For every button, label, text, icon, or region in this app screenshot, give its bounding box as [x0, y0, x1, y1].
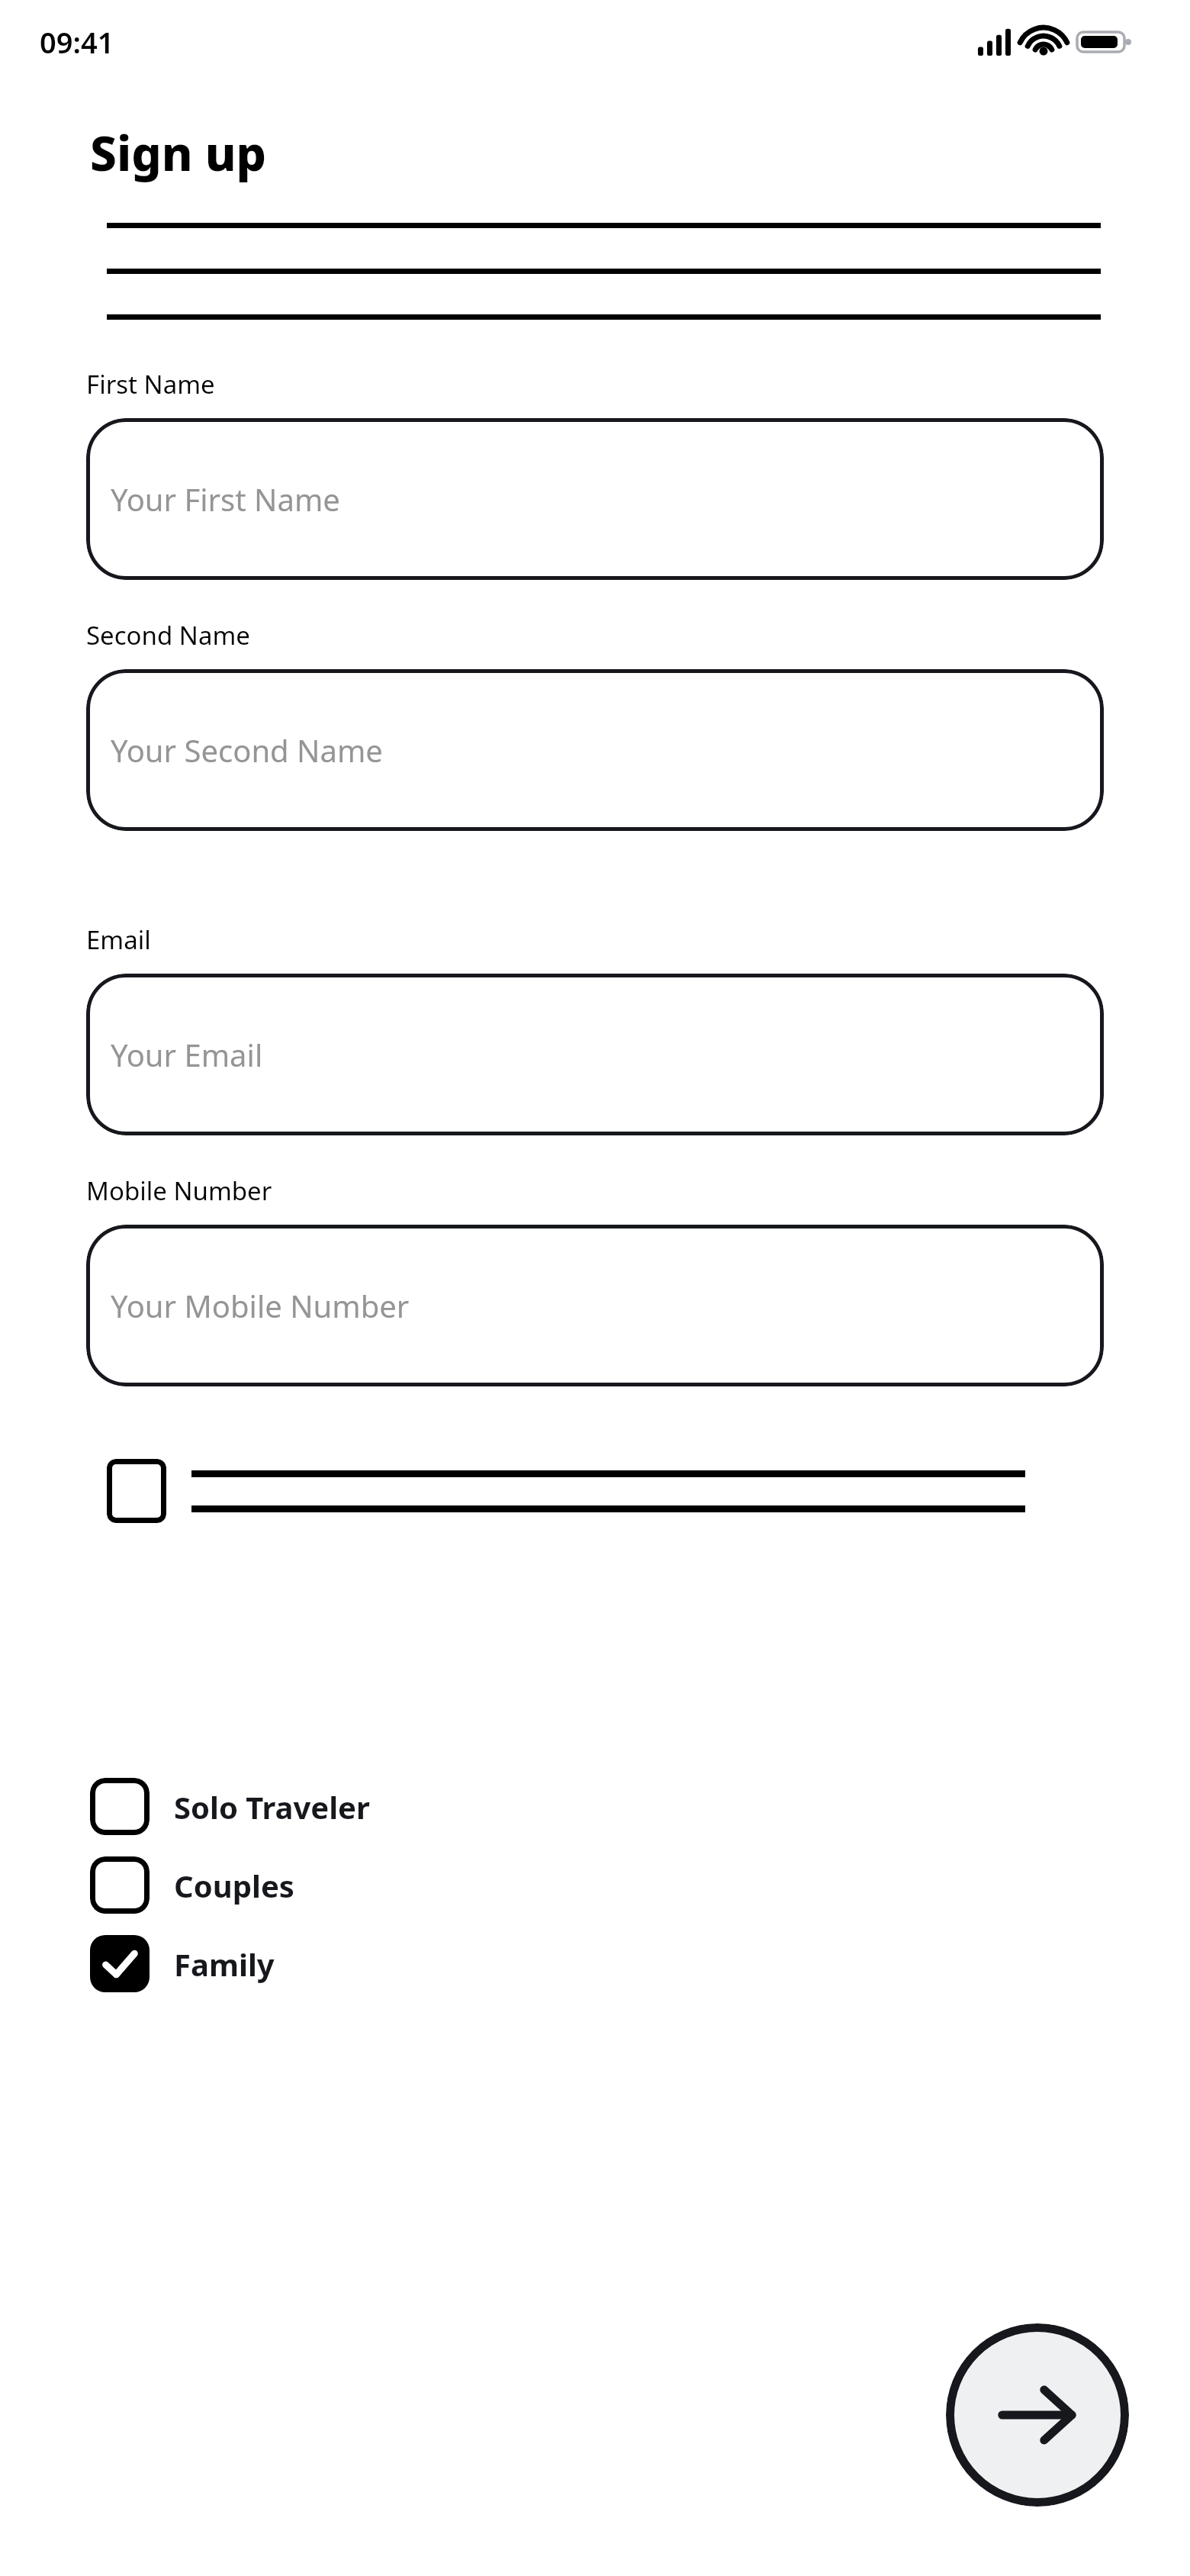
button[interactable]: Family [90, 1924, 1190, 2003]
staticText: Mobile Number [86, 1174, 272, 1208]
staticText: Your Email [111, 1034, 263, 1075]
staticText: Your Mobile Number [111, 1285, 410, 1326]
button[interactable]: Your Mobile Number [86, 1225, 1104, 1386]
button[interactable]: Next [946, 2323, 1129, 2507]
staticText: 09:41 [40, 22, 114, 62]
button[interactable]: Solo Traveler [90, 1767, 1190, 1846]
staticText: Your First Name [111, 478, 340, 520]
staticText: Family [174, 1943, 275, 1985]
button[interactable]: Your Email [86, 974, 1104, 1135]
staticText: Second Name [86, 618, 250, 652]
staticText: Couples [174, 1865, 294, 1906]
staticText: Sign up [90, 121, 267, 185]
staticText: First Name [86, 367, 215, 401]
button[interactable]: Your First Name [86, 418, 1104, 580]
staticText: Email [86, 923, 151, 957]
staticText: Your Second Name [111, 729, 383, 771]
staticText: Solo Traveler [174, 1786, 370, 1827]
button[interactable]: Your Second Name [86, 669, 1104, 831]
button[interactable]: Couples [90, 1846, 1190, 1924]
button[interactable]: Accept terms [107, 1459, 1083, 1523]
